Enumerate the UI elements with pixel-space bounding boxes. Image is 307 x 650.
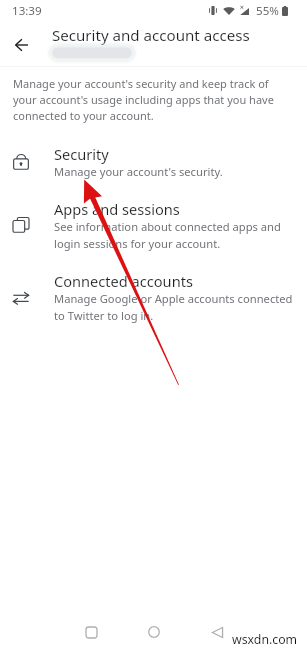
button[interactable]: Back	[200, 615, 234, 649]
staticText: Security	[54, 144, 109, 164]
staticText: Connected accounts	[54, 271, 193, 291]
button[interactable]: Security	[0, 143, 307, 198]
staticText: Apps and sessions	[54, 199, 180, 219]
staticText: Manage Google or Apple accounts connecte…	[54, 291, 294, 323]
button[interactable]: Home	[137, 615, 171, 649]
button[interactable]: Recents	[74, 615, 108, 649]
staticText: Security and account access	[52, 25, 250, 46]
button[interactable]: Back	[6, 30, 36, 60]
button[interactable]: Connected accounts	[0, 270, 307, 342]
staticText: Manage your account's security and keep …	[13, 76, 283, 123]
button[interactable]: Apps and sessions	[0, 198, 307, 270]
staticText: 13:39	[12, 3, 42, 19]
staticText: Manage your account's security.	[54, 164, 223, 179]
staticText: 55%	[256, 3, 279, 19]
staticText: wsxdn.com	[232, 631, 298, 648]
staticText: See information about connected apps and…	[54, 219, 294, 251]
